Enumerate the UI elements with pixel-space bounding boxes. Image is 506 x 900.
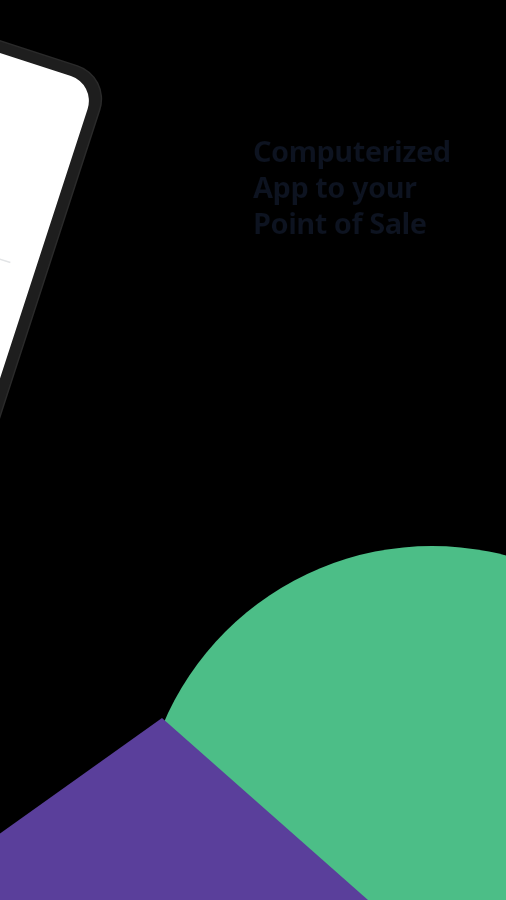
button[interactable]: Phone mockup showing login screen	[0, 0, 300, 640]
